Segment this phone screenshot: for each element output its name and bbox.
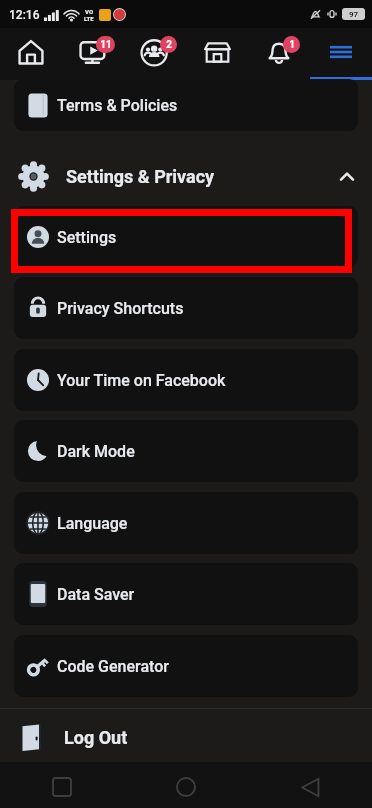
staticText: LTE xyxy=(84,15,94,22)
staticText: Settings xyxy=(57,228,117,247)
button[interactable]: Home xyxy=(124,762,248,808)
staticText: Code Generator xyxy=(57,657,169,676)
staticText: 2 xyxy=(166,39,172,51)
button[interactable]: Marketplace xyxy=(186,28,248,80)
button[interactable]: Back xyxy=(248,762,372,808)
button[interactable]: Your Time on Facebook xyxy=(14,349,358,411)
staticText: Log Out xyxy=(64,727,128,748)
staticText: 1 xyxy=(289,39,295,51)
button[interactable]: Notifications xyxy=(248,28,310,80)
button[interactable]: Data Saver xyxy=(14,563,358,625)
button[interactable]: Menu xyxy=(310,28,372,80)
button[interactable]: Home xyxy=(0,28,62,80)
button[interactable]: Video xyxy=(62,28,124,80)
button[interactable]: Groups xyxy=(124,28,186,80)
staticText: 97 xyxy=(349,10,359,19)
staticText: Terms & Policies xyxy=(57,96,178,115)
button[interactable]: Recents xyxy=(0,762,124,808)
staticText: Data Saver xyxy=(57,585,135,604)
staticText: 11 xyxy=(100,39,112,51)
button[interactable]: Language xyxy=(14,492,358,554)
staticText: 12:16 xyxy=(9,8,40,22)
button[interactable]: Dark Mode xyxy=(14,420,358,482)
button[interactable]: Settings xyxy=(14,206,358,268)
staticText: VO xyxy=(85,8,94,15)
button[interactable]: Privacy Shortcuts xyxy=(14,277,358,339)
button[interactable]: Settings & Privacy xyxy=(0,148,372,204)
staticText: Settings & Privacy xyxy=(66,166,215,187)
staticText: Language xyxy=(57,514,128,533)
staticText: Your Time on Facebook xyxy=(57,371,226,390)
staticText: Dark Mode xyxy=(57,442,135,461)
button[interactable]: Log Out xyxy=(0,709,372,766)
staticText: Privacy Shortcuts xyxy=(57,299,184,318)
button[interactable]: Code Generator xyxy=(14,635,358,697)
button[interactable]: Terms & Policies xyxy=(14,79,358,131)
